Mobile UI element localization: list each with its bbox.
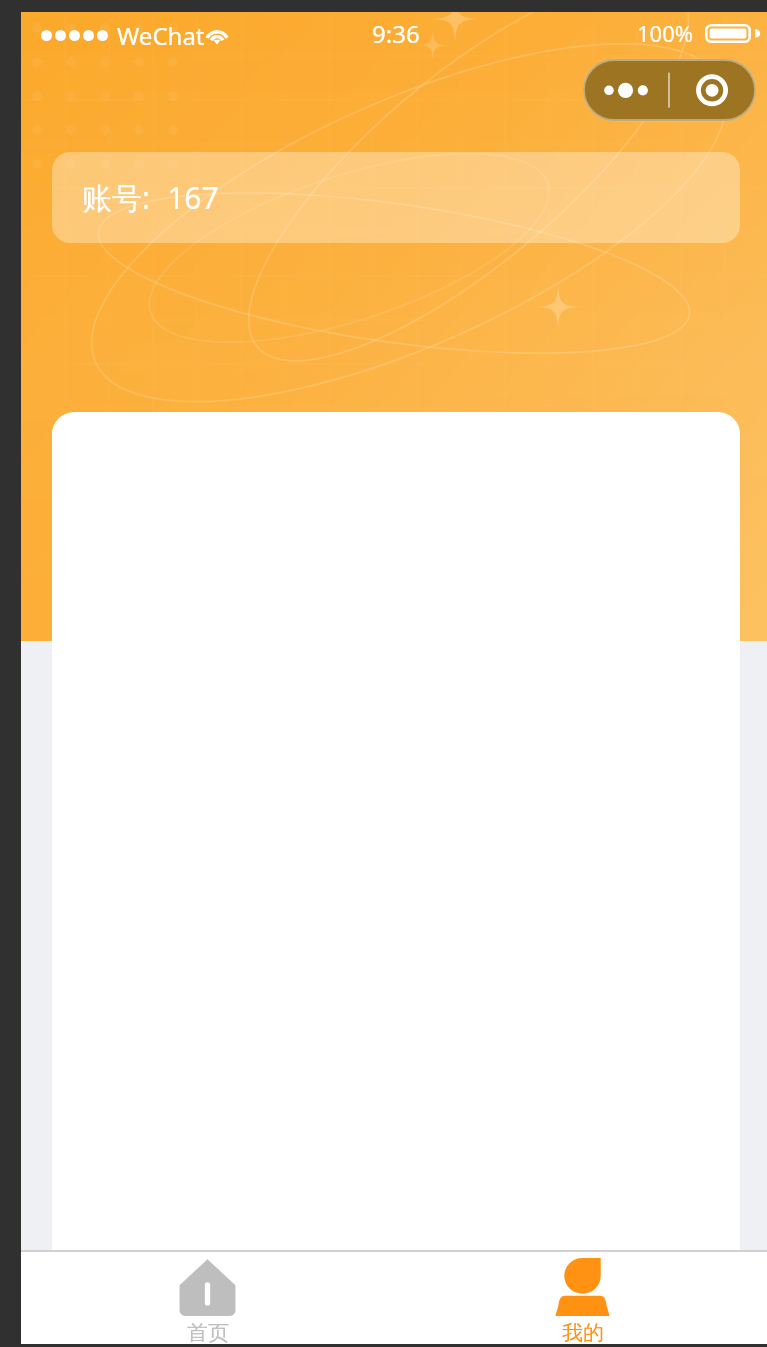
staticText: 100% xyxy=(637,18,694,48)
button[interactable]: Mini program menu xyxy=(583,59,756,121)
staticText: 账号: 167 xyxy=(82,177,219,218)
button[interactable]: 我的 xyxy=(394,1252,767,1344)
staticText: 首页 xyxy=(187,1320,229,1344)
button[interactable]: 账号: 167 xyxy=(52,152,740,243)
button[interactable]: 首页 xyxy=(21,1252,394,1344)
staticText: 9:36 xyxy=(372,17,420,50)
staticText: 我的 xyxy=(562,1320,604,1344)
staticText: WeChat xyxy=(117,19,205,52)
